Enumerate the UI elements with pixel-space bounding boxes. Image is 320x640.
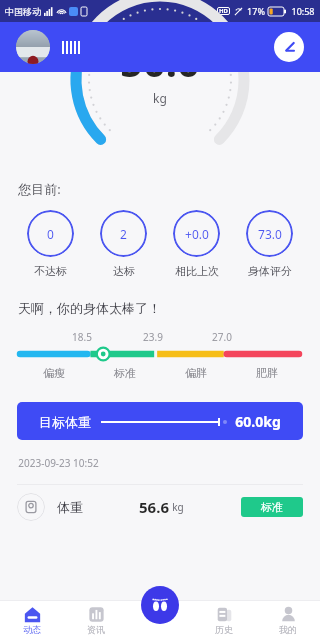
staticText: 50.0 (120, 34, 200, 88)
button[interactable]: 体重 (17, 485, 303, 529)
staticText: 身体评分 (248, 264, 292, 278)
staticText: 您目前: (18, 180, 61, 198)
staticText: 天啊，你的身体太棒了！ (18, 300, 161, 316)
staticText: 标准 (114, 366, 136, 380)
button[interactable]: Edit (274, 32, 304, 62)
staticText: 相比上次 (175, 264, 219, 278)
button[interactable]: 我的 (256, 600, 320, 640)
staticText: 73.0 (258, 226, 282, 242)
staticText: 56.6 (139, 497, 169, 517)
staticText: 资讯 (87, 624, 105, 635)
staticText: 27.0 (212, 330, 232, 344)
staticText: 10:58 (291, 5, 315, 17)
button[interactable]: 目标体重 (17, 402, 303, 440)
staticText: 目标体重 (39, 414, 91, 430)
staticText: 23.9 (143, 330, 163, 344)
staticText: 2 (120, 226, 127, 242)
button[interactable]: Measure (141, 586, 179, 624)
staticText: 偏瘦 (43, 366, 65, 380)
button[interactable]: 历史 (192, 600, 256, 640)
staticText: 动态 (23, 624, 41, 635)
button[interactable]: 2 (87, 210, 160, 278)
staticText: kg (172, 500, 184, 514)
staticText: 2023-09-23 10:52 (18, 456, 99, 470)
staticText: 0 (47, 226, 54, 242)
staticText: HD (219, 7, 228, 15)
staticText: 我的 (279, 624, 297, 635)
staticText: 17% (247, 5, 265, 17)
button[interactable]: 动态 (0, 600, 64, 640)
staticText: 60.0kg (235, 412, 281, 431)
staticText: +0.0 (185, 226, 209, 242)
button[interactable]: 0 (14, 210, 87, 278)
staticText: 不达标 (34, 264, 67, 278)
staticText: 达标 (113, 264, 135, 278)
button[interactable]: Profile photo (16, 30, 50, 64)
staticText: 偏胖 (185, 366, 207, 380)
staticText: 历史 (215, 624, 233, 635)
staticText: 标准 (261, 500, 283, 514)
button[interactable]: 资讯 (64, 600, 128, 640)
staticText: 中国移动 (5, 6, 41, 17)
staticText: 肥胖 (256, 366, 278, 380)
staticText: 体重 (57, 499, 83, 515)
staticText: 18.5 (72, 330, 92, 344)
button[interactable]: 73.0 (233, 210, 306, 278)
staticText: kg (153, 90, 167, 106)
button[interactable]: +0.0 (160, 210, 233, 278)
